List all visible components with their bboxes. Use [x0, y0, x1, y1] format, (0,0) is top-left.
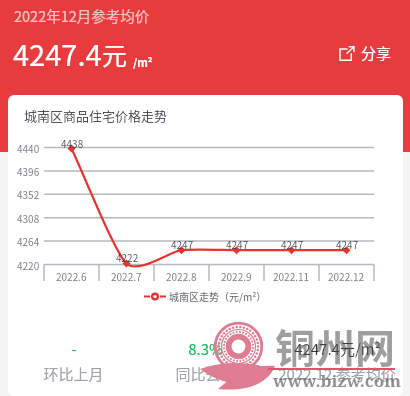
staticText: - — [71, 338, 77, 360]
staticText: 4247.4元/m² — [294, 338, 381, 360]
staticText: 8.3% — [188, 338, 223, 360]
staticText: 城南区商品住宅价格走势 — [24, 106, 168, 125]
staticText: 同比去年 — [175, 363, 236, 385]
staticText: 城南区走势（元/m²） — [169, 289, 267, 303]
staticText: /m² — [133, 54, 153, 70]
staticText: 2022.12 参考均价 — [278, 363, 396, 385]
staticText: 2022年12月参考均价 — [14, 5, 150, 26]
staticText: 分享 — [361, 42, 392, 64]
button[interactable]: 分享 — [332, 36, 398, 70]
staticText: 环比上月 — [43, 363, 104, 385]
other: 分享 — [338, 45, 355, 62]
staticText: 元 — [102, 36, 128, 72]
staticText: 4247.4 — [13, 32, 102, 74]
